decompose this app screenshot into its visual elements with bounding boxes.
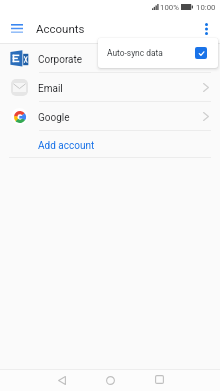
button[interactable]: Recent apps [135, 370, 184, 389]
button[interactable]: Corporate [0, 44, 220, 72]
staticText: Add account [38, 140, 95, 152]
button[interactable]: Open navigation drawer [0, 14, 34, 43]
staticText: Email [38, 83, 63, 95]
staticText: Accounts [36, 22, 85, 35]
staticText: Google [38, 112, 70, 124]
staticText: Auto-sync data [107, 48, 163, 58]
button[interactable]: Google [0, 102, 220, 130]
staticText: 100% [160, 3, 179, 12]
button[interactable]: Add account [0, 131, 220, 157]
staticText: 10:00 [196, 3, 216, 12]
staticText: Corporate [38, 54, 83, 66]
button[interactable]: More options [193, 14, 220, 43]
button[interactable]: Home [86, 370, 135, 390]
button[interactable]: Email [0, 73, 220, 101]
button[interactable]: Back [37, 370, 86, 390]
button[interactable]: Auto-sync data [98, 38, 218, 68]
